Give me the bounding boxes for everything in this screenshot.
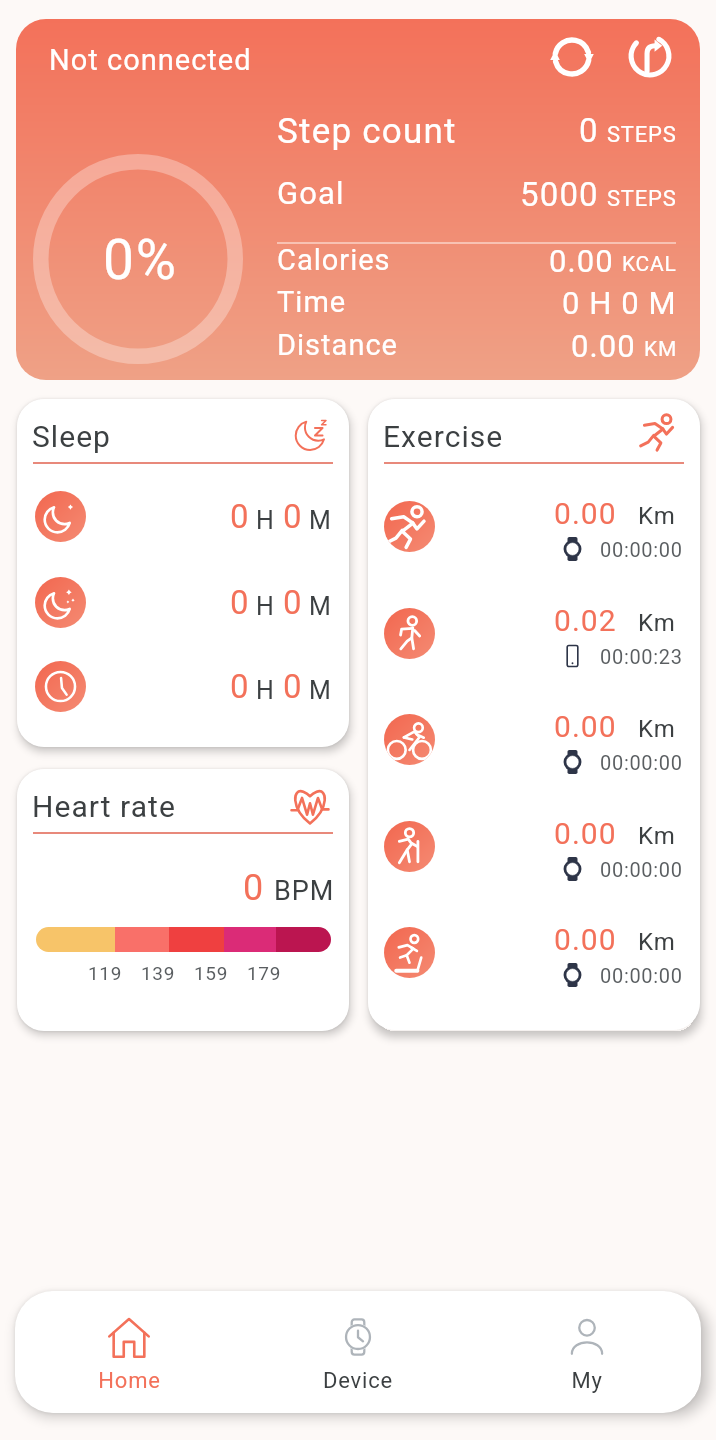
staticText: My	[571, 1368, 603, 1394]
staticText: STEPS	[607, 122, 677, 148]
staticText: M	[309, 676, 332, 705]
staticText: 0.00	[554, 496, 617, 531]
button[interactable]: 0	[35, 572, 332, 632]
staticText: 0	[230, 667, 250, 706]
staticText: M	[309, 592, 332, 621]
button[interactable]: 0.02	[368, 589, 700, 677]
staticText: 0	[230, 583, 250, 622]
staticText: Km	[638, 928, 676, 956]
staticText: 00:00:00	[600, 538, 683, 561]
staticText: 0.02	[554, 603, 617, 638]
staticText: Heart rate	[32, 789, 176, 824]
staticText: H	[256, 592, 275, 621]
staticText: 0	[230, 497, 250, 536]
button[interactable]: 0.00	[368, 482, 700, 570]
staticText: BPM	[274, 875, 335, 907]
button[interactable]: 0.00	[368, 802, 700, 890]
button[interactable]: 0.00	[368, 695, 700, 783]
staticText: H	[256, 506, 275, 535]
staticText: Time	[277, 285, 347, 319]
staticText: Step count	[277, 111, 457, 152]
staticText: Km	[638, 609, 676, 637]
staticText: Distance	[277, 328, 399, 362]
staticText: 0%	[103, 228, 179, 292]
staticText: Not connected	[49, 43, 252, 77]
staticText: 0.00	[554, 816, 617, 851]
staticText: 0	[283, 667, 303, 706]
staticText: 00:00:23	[600, 645, 683, 668]
button[interactable]: 0	[35, 656, 332, 716]
staticText: 0 H 0 M	[562, 285, 677, 321]
staticText: 159	[194, 962, 229, 984]
staticText: Exercise	[383, 419, 504, 454]
staticText: 0	[579, 111, 599, 150]
button[interactable]: 0	[35, 486, 332, 546]
staticText: 119	[88, 962, 123, 984]
staticText: Km	[638, 502, 676, 530]
staticText: 00:00:00	[600, 751, 683, 774]
staticText: H	[256, 676, 275, 705]
button[interactable]: Device	[243, 1291, 472, 1413]
staticText: 0.00	[554, 709, 617, 744]
staticText: 00:00:00	[600, 858, 683, 881]
button[interactable]: 0.00	[368, 908, 700, 996]
staticText: Home	[98, 1368, 161, 1394]
button[interactable]: Refresh	[620, 26, 680, 86]
staticText: 0.00	[549, 243, 614, 279]
staticText: 0.00	[571, 328, 636, 364]
staticText: 139	[141, 962, 176, 984]
staticText: Km	[638, 715, 676, 743]
staticText: KM	[644, 337, 677, 362]
staticText: KCAL	[622, 252, 677, 277]
staticText: Calories	[277, 243, 391, 277]
staticText: 5000	[520, 175, 599, 214]
staticText: 0.00	[554, 922, 617, 957]
button[interactable]: Sync	[542, 27, 602, 87]
staticText: 179	[247, 962, 282, 984]
staticText: 0	[243, 867, 265, 909]
staticText: 00:00:00	[600, 964, 683, 987]
staticText: Goal	[277, 175, 345, 211]
staticText: M	[309, 506, 332, 535]
button[interactable]: Home	[15, 1291, 243, 1413]
staticText: 0	[283, 583, 303, 622]
staticText: Device	[323, 1368, 393, 1394]
staticText: STEPS	[607, 186, 677, 212]
staticText: Sleep	[32, 419, 112, 454]
button[interactable]: My	[472, 1291, 701, 1413]
staticText: 0	[283, 497, 303, 536]
staticText: Km	[638, 822, 676, 850]
